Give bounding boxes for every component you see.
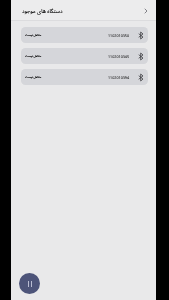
button[interactable]: متصل نیست	[21, 48, 148, 64]
staticText: متصل نیست	[25, 54, 42, 58]
button[interactable]: More	[141, 6, 150, 15]
other: Bluetooth	[139, 74, 143, 81]
staticText: متصل نیست	[25, 33, 42, 37]
staticText: متصل نیست	[25, 33, 42, 37]
staticText: متصل نیست	[25, 75, 42, 79]
button[interactable]: Pause scan	[19, 273, 40, 294]
button[interactable]: متصل نیست	[21, 27, 148, 43]
button[interactable]: متصل نیست	[21, 69, 148, 85]
staticText: 1102010394	[108, 75, 130, 80]
staticText: متصل نیست	[25, 54, 42, 58]
staticText: دستگاه های موجود	[22, 7, 63, 14]
other: Bluetooth	[139, 32, 143, 39]
staticText: دستگاه های موجود	[22, 7, 63, 14]
staticText: متصل نیست	[25, 75, 42, 79]
staticText: 1102010350	[108, 33, 130, 38]
button[interactable]: دستگاه های موجود	[11, 0, 156, 20]
staticText: 1102010345	[108, 54, 130, 59]
other: Bluetooth	[139, 53, 143, 60]
